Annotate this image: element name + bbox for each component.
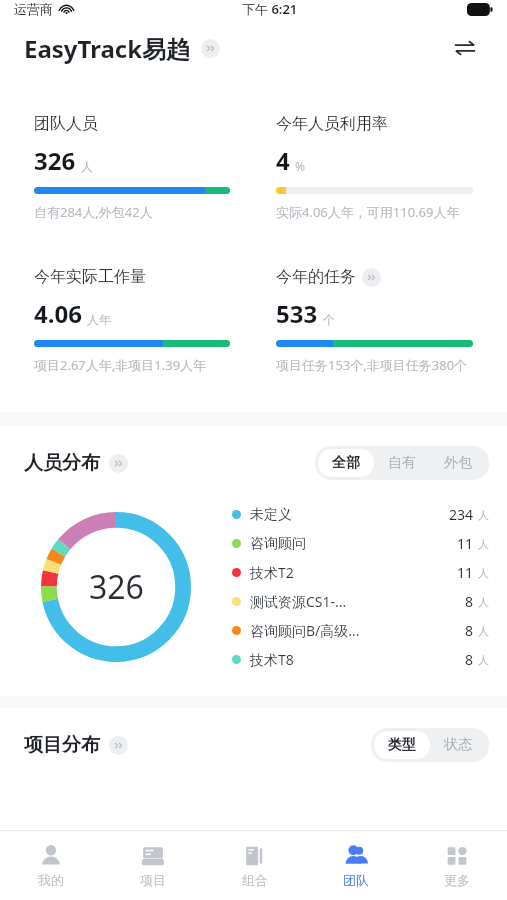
button[interactable]: More <box>201 39 220 58</box>
staticText: 项目任务153个,非项目任务380个 <box>276 356 468 374</box>
staticText: 8 <box>465 592 474 611</box>
button[interactable]: 咨询顾问B/高级... <box>232 616 489 645</box>
staticText: 326 <box>89 565 144 609</box>
staticText: 今年人员利用率 <box>276 114 388 134</box>
button[interactable]: Switch <box>447 30 483 66</box>
staticText: 技术T8 <box>250 650 294 669</box>
staticText: 326 <box>34 144 76 177</box>
button[interactable]: 技术T2 <box>232 558 489 587</box>
staticText: 团队 <box>343 872 369 888</box>
button[interactable]: 团队 <box>305 837 406 894</box>
staticText: 今年的任务 <box>276 267 356 287</box>
staticText: 个 <box>323 312 335 327</box>
staticText: 更多 <box>444 872 470 888</box>
staticText: 11 <box>457 534 474 553</box>
staticText: 人年 <box>87 312 111 327</box>
staticText: 4 <box>276 144 290 177</box>
staticText: 234 <box>449 505 474 524</box>
button[interactable]: 今年的任务 <box>260 251 489 390</box>
staticText: 实际4.06人年，可用110.69人年 <box>276 203 460 221</box>
button[interactable]: 自有 <box>374 449 430 477</box>
button[interactable]: 团队人员 <box>18 98 246 237</box>
staticText: 人 <box>478 653 489 667</box>
button[interactable]: 项目 <box>102 837 204 894</box>
button[interactable]: 今年实际工作量 <box>18 251 246 390</box>
staticText: EasyTrack易趋 <box>24 32 191 65</box>
staticText: 外包 <box>444 454 472 472</box>
button[interactable]: More <box>109 736 128 755</box>
staticText: 8 <box>465 621 474 640</box>
button[interactable]: More <box>109 454 128 473</box>
staticText: 自有284人,外包42人 <box>34 203 153 221</box>
staticText: 团队人员 <box>34 114 98 134</box>
staticText: 人 <box>478 508 489 522</box>
staticText: 未定义 <box>250 506 292 524</box>
button[interactable]: 未定义 <box>232 500 489 529</box>
button[interactable]: 更多 <box>406 837 507 894</box>
staticText: 咨询顾问B/高级... <box>250 621 360 640</box>
staticText: 状态 <box>444 736 472 754</box>
staticText: 人员分布 <box>24 451 100 475</box>
button[interactable]: 咨询顾问 <box>232 529 489 558</box>
button[interactable]: 全部 <box>318 449 374 477</box>
staticText: 项目 <box>140 872 166 888</box>
button[interactable]: 状态 <box>430 731 486 759</box>
staticText: 运营商 <box>14 1 53 17</box>
staticText: 项目2.67人年,非项目1.39人年 <box>34 356 207 374</box>
staticText: % <box>295 158 305 174</box>
staticText: 全部 <box>332 454 360 472</box>
button[interactable]: 组合 <box>204 837 305 894</box>
button[interactable]: 技术T8 <box>232 645 489 674</box>
staticText: 技术T2 <box>250 563 294 582</box>
button[interactable]: 外包 <box>430 449 486 477</box>
staticText: 11 <box>457 563 474 582</box>
staticText: 测试资源CS1-... <box>250 592 347 611</box>
button[interactable]: 我的 <box>0 837 102 894</box>
staticText: 咨询顾问 <box>250 535 306 553</box>
staticText: 人 <box>478 566 489 580</box>
staticText: 项目分布 <box>24 733 100 757</box>
staticText: 组合 <box>242 872 268 888</box>
button[interactable]: 今年人员利用率 <box>260 98 489 237</box>
staticText: 人 <box>81 159 93 174</box>
staticText: 类型 <box>388 736 416 754</box>
staticText: 4.06 <box>34 297 82 330</box>
staticText: 533 <box>276 297 318 330</box>
staticText: 人 <box>478 624 489 638</box>
button[interactable]: 类型 <box>374 731 430 759</box>
staticText: 人 <box>478 537 489 551</box>
staticText: 今年实际工作量 <box>34 267 146 287</box>
staticText: 自有 <box>388 454 416 472</box>
staticText: 8 <box>465 650 474 669</box>
staticText: 我的 <box>38 872 64 888</box>
staticText: 下午 6:21 <box>242 0 298 18</box>
button[interactable]: 测试资源CS1-... <box>232 587 489 616</box>
button[interactable]: More <box>362 268 381 287</box>
staticText: 人 <box>478 595 489 609</box>
